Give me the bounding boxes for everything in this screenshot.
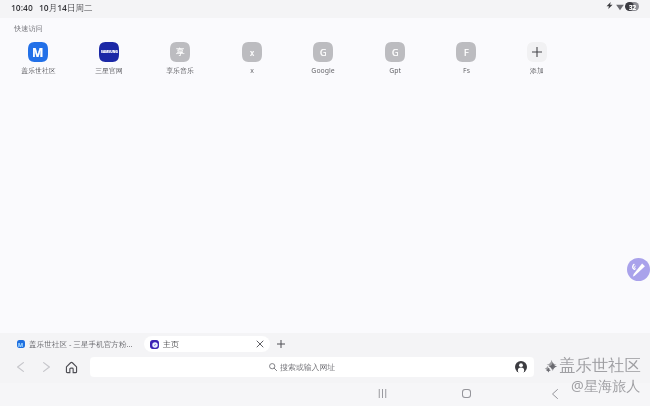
staticText: x [250,66,254,75]
staticText: 盖乐世社区 [21,66,56,75]
button[interactable]: 返回 [543,382,567,405]
button[interactable]: 主屏幕 [454,382,478,405]
staticText: 10:40 [11,2,33,14]
staticText: G [320,46,327,58]
staticText: Fs [463,66,470,75]
staticText: M [18,341,24,348]
button[interactable]: M [5,42,71,75]
staticText: 10月14日周二 [39,2,93,14]
staticText: 享 [176,47,185,58]
staticText: G [392,46,399,58]
staticText: 添加 [530,66,544,75]
staticText: 盖乐世社区 [559,355,641,376]
button[interactable]: 前进 [36,357,56,377]
staticText: Gpt [389,66,401,75]
button[interactable]: 搜索或输入网址 [90,357,534,377]
staticText: 盖乐世社区 - 三星手机官方粉... [29,339,133,349]
button[interactable]: 享 [147,42,213,75]
button[interactable]: G [290,42,356,75]
button[interactable]: M [14,336,139,352]
button[interactable]: 添加 [504,42,570,75]
staticText: 搜索或输入网址 [280,362,336,372]
staticText: 快速访问 [14,24,43,33]
staticText: 32 [629,3,637,11]
button[interactable]: 后退 [10,357,30,377]
button[interactable]: 新建标签页 [273,336,289,352]
button[interactable]: F [433,42,499,75]
staticText: SAMSUNG [101,50,118,54]
staticText: @星海旅人 [571,376,641,395]
button[interactable]: SAMSUNG [76,42,142,75]
other: 添加 [527,42,547,62]
staticText: 三星官网 [95,66,123,75]
staticText: 享乐音乐 [166,66,194,75]
staticText: F [464,46,469,58]
staticText: Google [311,66,335,75]
staticText: x [250,47,255,58]
button[interactable]: x [219,42,285,75]
button[interactable]: 主页 [61,357,81,377]
staticText: 主页 [163,339,257,349]
button[interactable]: G [362,42,428,75]
button[interactable]: AI 助手 [542,358,560,376]
button[interactable]: 最近任务 [370,382,394,405]
button[interactable]: 智能助手 [627,258,650,281]
staticText: M [32,44,44,60]
button[interactable]: 主页 [144,336,270,352]
